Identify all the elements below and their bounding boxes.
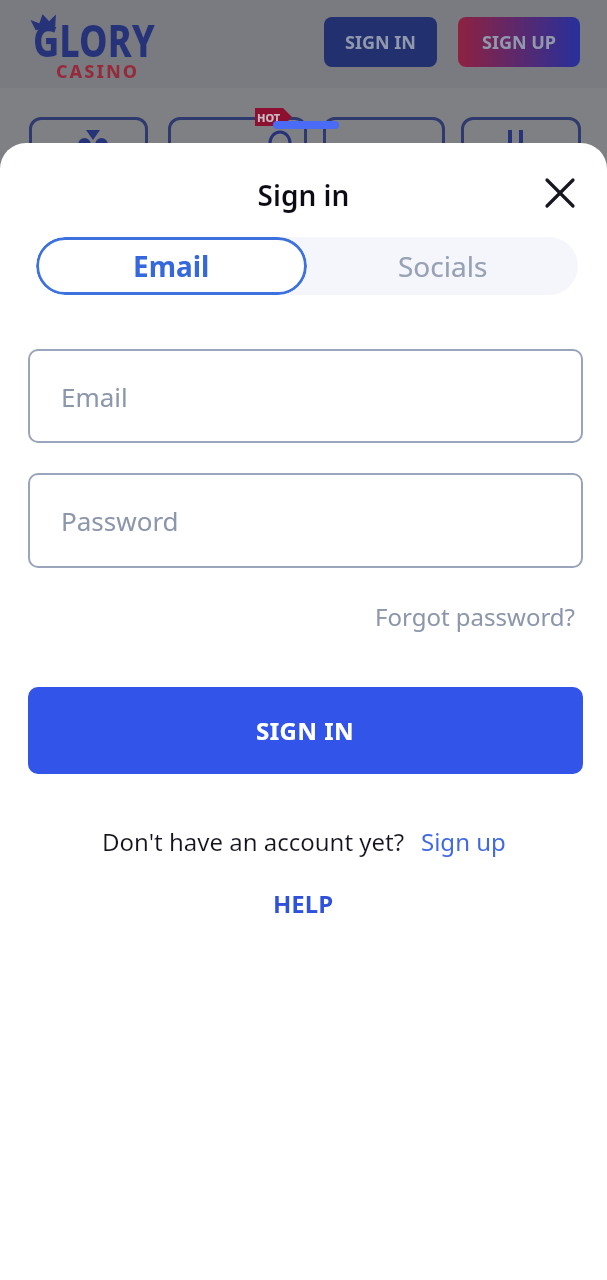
button[interactable]: [29, 117, 148, 177]
staticText: Socials: [398, 247, 488, 285]
button[interactable]: [539, 172, 581, 214]
staticText: Don't have an account yet?: [102, 825, 405, 858]
staticText: GLORY: [33, 11, 155, 70]
button[interactable]: SIGN IN: [28, 687, 583, 774]
button[interactable]: Socials: [307, 237, 578, 295]
staticText: HOT: [257, 110, 281, 125]
staticText: Email: [61, 379, 128, 414]
button[interactable]: Forgot password?: [375, 600, 576, 633]
staticText: SIGN IN: [345, 30, 416, 55]
button[interactable]: Sign up: [421, 825, 506, 858]
button[interactable]: [323, 117, 445, 177]
button[interactable]: [168, 117, 307, 177]
button[interactable]: SIGN UP: [458, 17, 580, 67]
staticText: SIGN IN: [256, 714, 355, 747]
button[interactable]: Password: [28, 473, 583, 568]
staticText: Sign in: [0, 176, 607, 214]
staticText: Email: [133, 247, 210, 285]
button[interactable]: Email: [28, 349, 583, 443]
button[interactable]: HELP: [273, 887, 334, 920]
button[interactable]: Email: [36, 237, 307, 295]
button[interactable]: [461, 117, 581, 177]
button[interactable]: SIGN IN: [324, 17, 437, 67]
staticText: Password: [61, 503, 179, 538]
staticText: SIGN UP: [482, 30, 557, 55]
staticText: CASINO: [56, 59, 140, 84]
